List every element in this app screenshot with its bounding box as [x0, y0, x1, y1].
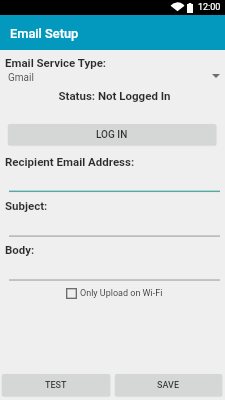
- button[interactable]: [9, 276, 220, 284]
- staticText: LOG IN: [96, 129, 128, 141]
- other: Battery: [187, 3, 193, 13]
- staticText: Status: Not Logged In: [2, 89, 225, 102]
- button[interactable]: TEST: [2, 374, 110, 396]
- staticText: Subject:: [5, 199, 48, 212]
- button[interactable]: Gmail: [0, 70, 225, 86]
- button[interactable]: [9, 187, 220, 195]
- button[interactable]: [9, 232, 220, 240]
- staticText: TEST: [45, 380, 67, 391]
- staticText: Body:: [5, 243, 35, 256]
- staticText: SAVE: [157, 380, 180, 391]
- staticText: Recipient Email Address:: [5, 155, 135, 168]
- button[interactable]: SAVE: [115, 374, 222, 396]
- button[interactable]: Only Upload on Wi-Fi: [66, 288, 163, 299]
- button[interactable]: LOG IN: [8, 124, 216, 145]
- staticText: Email Setup: [10, 26, 79, 41]
- other: Wi-Fi signal: [172, 3, 183, 12]
- staticText: 12:00: [198, 2, 221, 13]
- staticText: Email Service Type:: [5, 56, 107, 69]
- staticText: Gmail: [8, 72, 34, 84]
- staticText: Only Upload on Wi-Fi: [80, 288, 163, 299]
